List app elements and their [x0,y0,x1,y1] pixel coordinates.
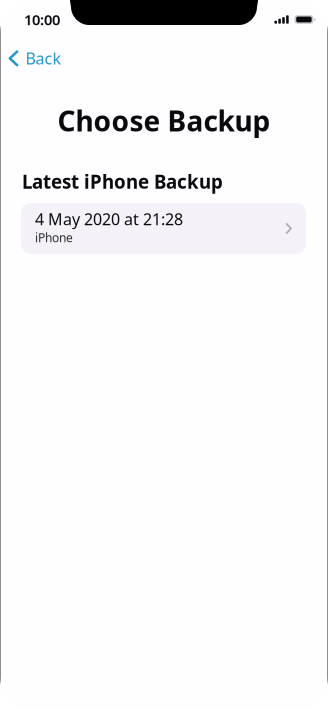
staticText: Back [25,48,61,69]
staticText: Choose Backup [57,102,270,139]
staticText: 10:00 [24,10,60,29]
staticText: iPhone [35,230,73,245]
staticText: Latest iPhone Backup [22,169,223,194]
staticText: 4 May 2020 at 21:28 [35,208,183,230]
button[interactable]: 4 May 2020 at 21:28 [21,203,306,254]
button[interactable]: Back [0,39,61,73]
